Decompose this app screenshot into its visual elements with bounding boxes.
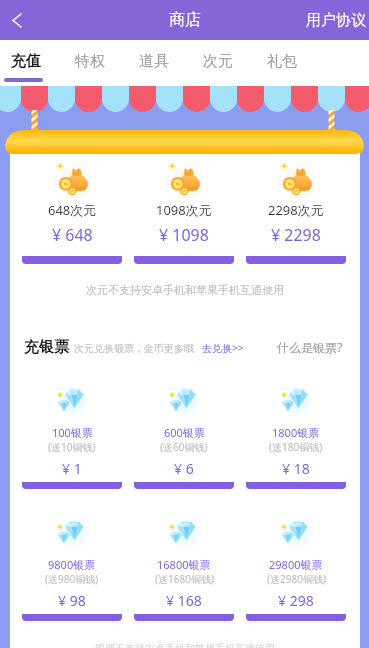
button[interactable]: 16800银票 bbox=[134, 507, 234, 621]
staticText: 9800银票 bbox=[48, 557, 96, 572]
button[interactable]: 100银票 bbox=[22, 375, 122, 489]
staticText: (送2980铜钱) bbox=[267, 572, 326, 586]
staticText: 充银票 bbox=[24, 338, 69, 357]
staticText: ¥ 1 bbox=[62, 459, 82, 478]
staticText: (送1680铜钱) bbox=[155, 572, 214, 586]
button[interactable]: 1098次元 bbox=[134, 154, 234, 264]
button[interactable]: 29800银票 bbox=[246, 507, 346, 621]
button[interactable]: 什么是银票? bbox=[277, 339, 343, 355]
staticText: 600银票 bbox=[164, 425, 205, 440]
staticText: 16800银票 bbox=[157, 557, 211, 572]
staticText: 去兑换>> bbox=[202, 341, 244, 355]
staticText: (送180铜钱) bbox=[269, 440, 323, 454]
button[interactable]: 次元 bbox=[186, 40, 250, 86]
staticText: 次元 bbox=[203, 52, 233, 71]
staticText: ¥ 168 bbox=[166, 591, 202, 610]
staticText: ¥ 6 bbox=[174, 459, 194, 478]
staticText: ¥ 18 bbox=[282, 459, 310, 478]
staticText: 什么是银票? bbox=[277, 339, 343, 355]
staticText: 特权 bbox=[75, 52, 105, 71]
staticText: 648次元 bbox=[48, 201, 97, 219]
button[interactable]: 特权 bbox=[58, 40, 122, 86]
staticText: 商店 bbox=[169, 10, 201, 30]
staticText: (送60铜钱) bbox=[160, 440, 208, 454]
staticText: ¥ 298 bbox=[278, 591, 314, 610]
staticText: 礼包 bbox=[267, 52, 297, 71]
staticText: 次元兑换银票，金币更多哦 bbox=[74, 342, 194, 355]
staticText: 银票不支持安卓手机和苹果手机互通使用 bbox=[95, 642, 275, 648]
staticText: ¥ 2298 bbox=[271, 224, 321, 246]
button[interactable]: 去兑换>> bbox=[202, 341, 244, 357]
staticText: 次元不支持安卓手机和苹果手机互通使用 bbox=[86, 283, 284, 297]
button[interactable]: 600银票 bbox=[134, 375, 234, 489]
button[interactable]: 9800银票 bbox=[22, 507, 122, 621]
staticText: 2298次元 bbox=[268, 201, 324, 219]
button[interactable]: Back bbox=[0, 0, 37, 40]
staticText: 用户协议 bbox=[306, 11, 366, 30]
button[interactable]: 用户协议 bbox=[296, 3, 369, 38]
staticText: ¥ 98 bbox=[58, 591, 86, 610]
button[interactable]: 道具 bbox=[122, 40, 186, 86]
button[interactable]: 2298次元 bbox=[246, 154, 346, 264]
button[interactable]: 1800银票 bbox=[246, 375, 346, 489]
staticText: 充值 bbox=[11, 52, 41, 71]
staticText: 1800银票 bbox=[272, 425, 320, 440]
staticText: 1098次元 bbox=[156, 201, 212, 219]
staticText: (送980铜钱) bbox=[45, 572, 99, 586]
staticText: 100银票 bbox=[52, 425, 93, 440]
staticText: 29800银票 bbox=[269, 557, 323, 572]
staticText: ¥ 1098 bbox=[159, 224, 209, 246]
staticText: ¥ 648 bbox=[52, 224, 93, 246]
button[interactable]: 礼包 bbox=[250, 40, 314, 86]
button[interactable]: 648次元 bbox=[22, 154, 122, 264]
button[interactable]: 充值 bbox=[0, 40, 58, 86]
staticText: (送10铜钱) bbox=[48, 440, 96, 454]
staticText: 道具 bbox=[139, 52, 169, 71]
